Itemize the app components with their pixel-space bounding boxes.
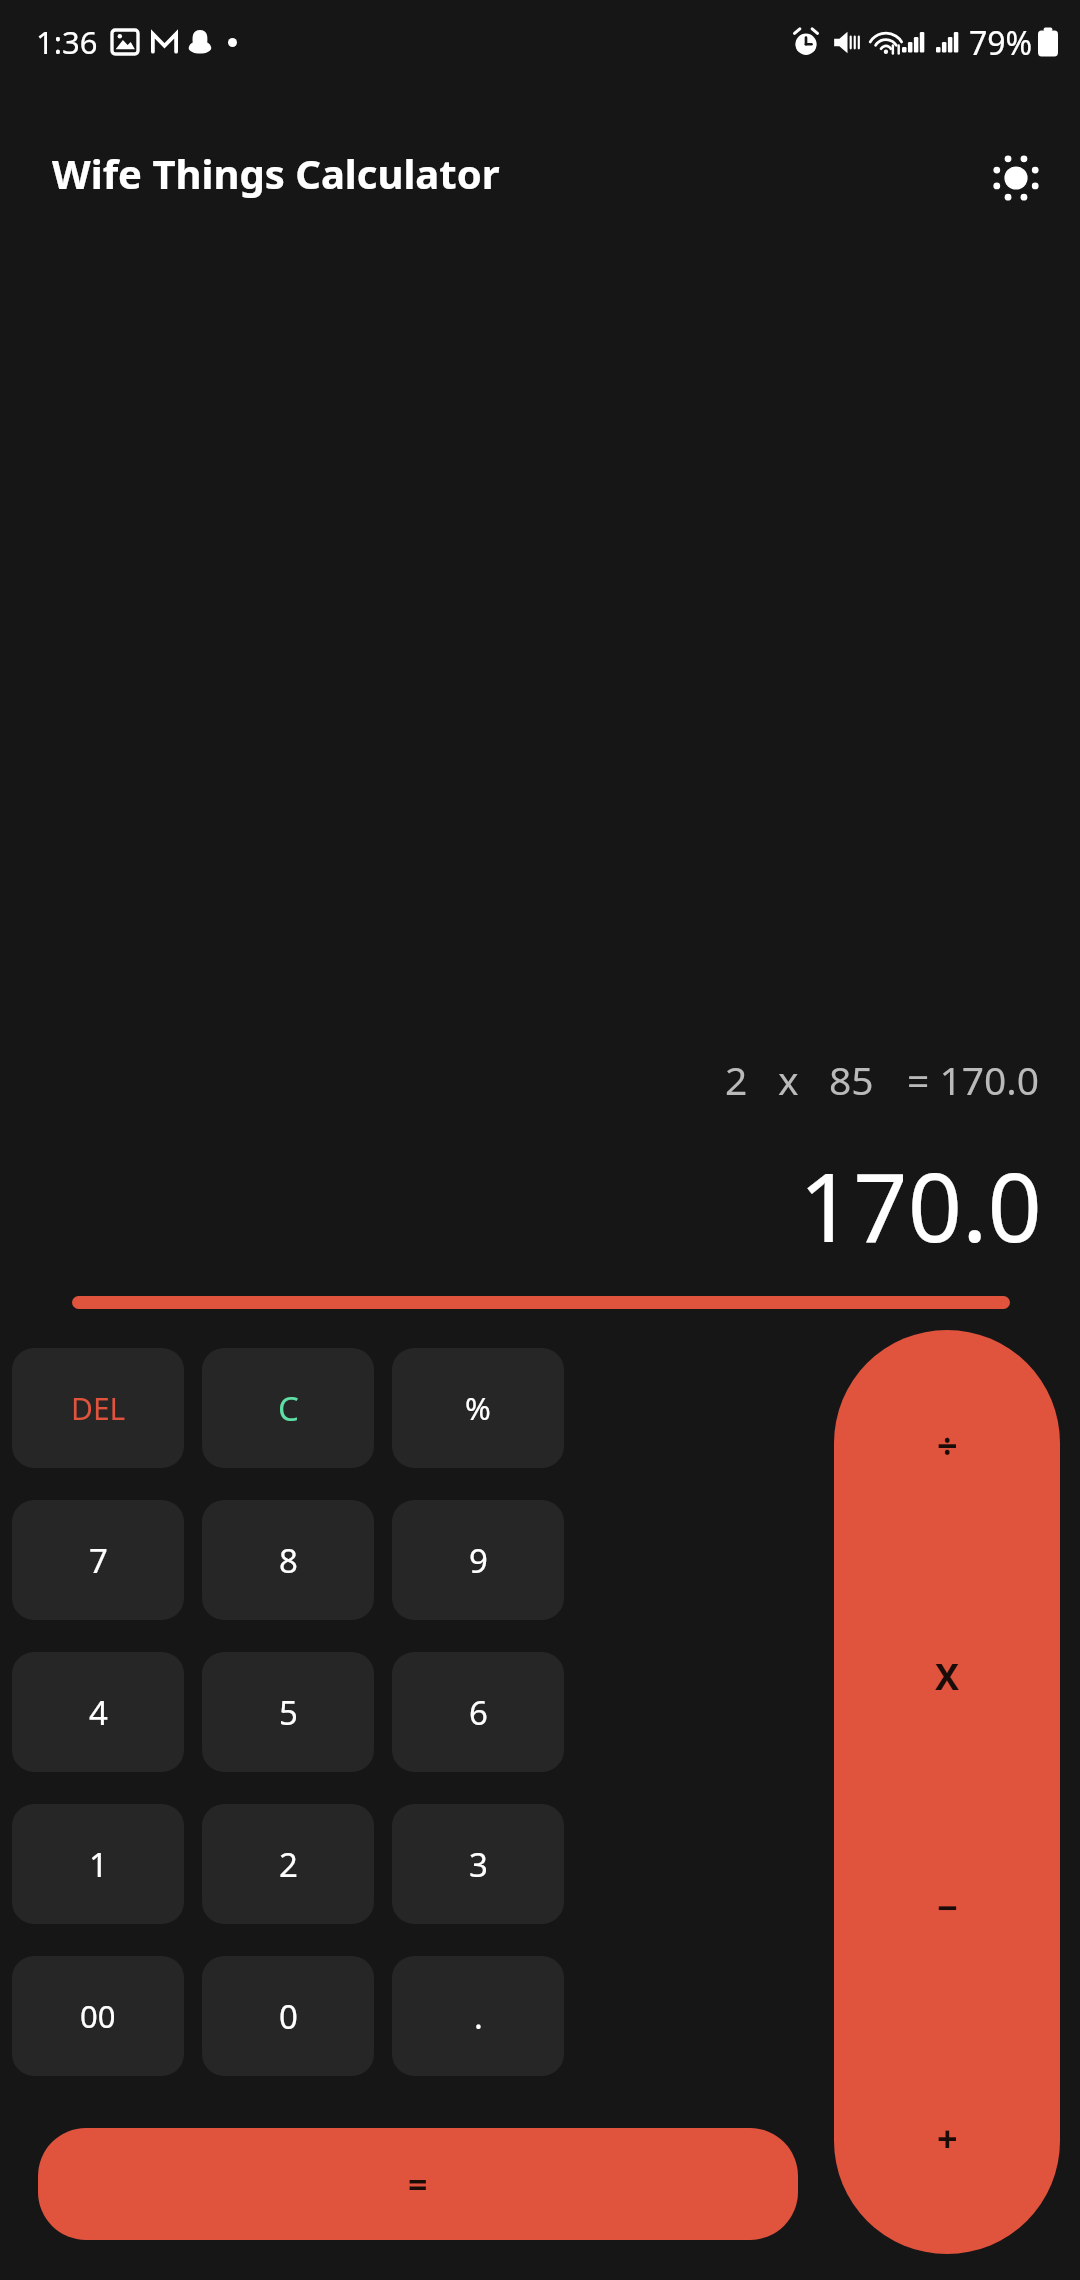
staticText: 170.0	[799, 1140, 1042, 1269]
staticText: 00	[80, 1995, 116, 2037]
button[interactable]: 9	[392, 1500, 564, 1620]
button[interactable]: 8	[202, 1500, 374, 1620]
staticText: ÷	[937, 1421, 958, 1470]
button[interactable]: Subtract	[834, 1792, 1060, 2023]
staticText: %	[465, 1387, 491, 1429]
staticText: x	[778, 1053, 799, 1106]
button[interactable]: 3	[392, 1804, 564, 1924]
staticText: = 170.0	[907, 1053, 1040, 1106]
button[interactable]: 00	[12, 1956, 184, 2076]
button[interactable]: Add	[834, 2023, 1060, 2254]
staticText: C	[278, 1386, 299, 1431]
staticText: +	[937, 2114, 958, 2163]
button[interactable]: Multiply	[834, 1561, 1060, 1792]
button[interactable]: 2	[202, 1804, 374, 1924]
staticText: 6	[469, 1690, 488, 1735]
button[interactable]: .	[392, 1956, 564, 2076]
staticText: 2	[725, 1053, 748, 1106]
staticText: =	[408, 2161, 428, 2207]
button[interactable]: 5	[202, 1652, 374, 1772]
staticText: 2	[279, 1842, 298, 1887]
button[interactable]: =	[38, 2128, 798, 2240]
staticText: 3	[469, 1842, 488, 1887]
button[interactable]: C	[202, 1348, 374, 1468]
button[interactable]: DEL	[12, 1348, 184, 1468]
staticText: 1	[89, 1842, 108, 1887]
button[interactable]: 1	[12, 1804, 184, 1924]
staticText: 7	[89, 1538, 108, 1583]
button[interactable]: 0	[202, 1956, 374, 2076]
staticText: 1:36	[36, 21, 98, 63]
button[interactable]: %	[392, 1348, 564, 1468]
staticText: X	[935, 1652, 960, 1701]
staticText: 79%	[969, 21, 1033, 63]
staticText: 8	[279, 1538, 298, 1583]
button[interactable]: Toggle brightness	[978, 140, 1054, 216]
staticText: 85	[829, 1053, 874, 1106]
staticText: 0	[279, 1994, 298, 2039]
button[interactable]: Divide	[834, 1330, 1060, 1561]
staticText: .	[474, 1994, 483, 2039]
staticText: −	[937, 1883, 958, 1932]
button[interactable]: 4	[12, 1652, 184, 1772]
button[interactable]: 6	[392, 1652, 564, 1772]
staticText: Wife Things Calculator	[52, 146, 500, 200]
button[interactable]: 7	[12, 1500, 184, 1620]
staticText: 9	[469, 1538, 488, 1583]
staticText: 5	[279, 1690, 298, 1735]
staticText: 4	[89, 1690, 108, 1735]
staticText: DEL	[71, 1388, 126, 1429]
